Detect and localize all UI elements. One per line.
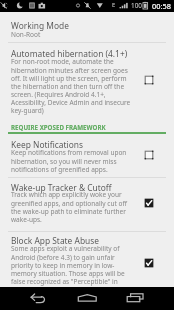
staticText: Keep Notifications	[11, 139, 83, 150]
button[interactable]: Automated hibernation (4.1+)	[138, 69, 160, 91]
staticText: Wake-up Tracker & Cutoff	[11, 182, 112, 193]
staticText: For non-root mode, automate the hibernat…	[11, 57, 133, 114]
button[interactable]	[0, 134, 174, 177]
button[interactable]: Recent apps	[116, 287, 174, 310]
button[interactable]: Keep Notifications	[138, 144, 160, 166]
button[interactable]	[0, 12, 174, 42]
staticText: Working Mode	[11, 20, 69, 31]
staticText: Automated hibernation (4.1+)	[11, 48, 128, 59]
staticText: 100	[131, 1, 142, 10]
button[interactable]: Back	[0, 287, 58, 310]
button[interactable]: Wake-up Tracker & Cutoff	[138, 192, 160, 214]
staticText: E	[112, 1, 116, 9]
staticText: 00:58	[152, 1, 171, 11]
button[interactable]	[0, 178, 174, 231]
staticText: Track which app explicitly woke your gre…	[11, 190, 133, 223]
staticText: Block App State Abuse	[11, 235, 99, 246]
staticText: Some apps exploit a vulnerability of And…	[11, 244, 133, 285]
staticText: Keep notifications from removal upon hib…	[11, 148, 133, 173]
button[interactable]	[0, 43, 174, 116]
staticText: Non-Root	[11, 30, 133, 39]
button[interactable]	[0, 232, 174, 287]
button[interactable]: Block App State Abuse	[138, 252, 160, 274]
staticText: REQUIRE XPOSED FRAMEWORK	[11, 123, 106, 131]
button[interactable]: Home	[58, 287, 116, 310]
